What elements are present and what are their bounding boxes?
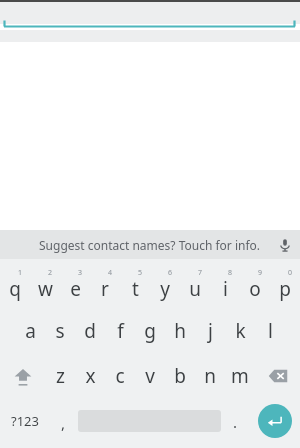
staticText: c [115,363,125,389]
staticText: j [208,318,213,344]
button[interactable]: j [195,308,225,353]
button[interactable]: 9 [240,263,270,308]
staticText: w [38,276,53,302]
button[interactable]: b [165,353,195,398]
staticText: 4 [108,268,113,278]
staticText: g [144,318,156,344]
button[interactable] [0,2,300,24]
button[interactable]: 3 [60,263,90,308]
button[interactable]: Shift [0,353,45,398]
button[interactable]: m [225,353,255,398]
staticText: y [160,276,170,302]
staticText: , [61,413,66,433]
button[interactable]: g [135,308,165,353]
staticText: d [84,318,96,344]
button[interactable]: 2 [30,263,60,308]
button[interactable]: Backspace [255,353,300,398]
button[interactable]: z [45,353,75,398]
staticText: 1 [18,268,23,278]
staticText: 7 [198,268,203,278]
staticText: a [25,318,36,344]
staticText: b [174,363,186,389]
button[interactable]: c [105,353,135,398]
staticText: l [268,318,273,344]
staticText: 8 [228,268,233,278]
button[interactable]: Enter [258,404,292,438]
button[interactable]: 5 [120,263,150,308]
staticText: 2 [48,268,53,278]
button[interactable]: v [135,353,165,398]
staticText: i [223,276,228,302]
staticText: q [9,276,21,302]
staticText: k [235,318,246,344]
staticText: v [145,363,155,389]
staticText: x [85,363,96,389]
button[interactable]: 6 [150,263,180,308]
button[interactable]: 1 [0,263,30,308]
staticText: t [132,276,139,302]
staticText: r [101,276,109,302]
button[interactable]: f [105,308,135,353]
button[interactable]: x [75,353,105,398]
button[interactable]: 8 [210,263,240,308]
button[interactable]: ?123 [0,398,49,444]
staticText: f [117,318,124,344]
button[interactable]: Suggest contact names? Touch for info. [39,230,261,259]
button[interactable]: 7 [180,263,210,308]
staticText: p [279,276,291,302]
button[interactable]: n [195,353,225,398]
button[interactable]: s [45,308,75,353]
button[interactable]: a [15,308,45,353]
button[interactable]: Voice input [270,230,300,259]
staticText: n [204,363,216,389]
staticText: h [174,318,186,344]
button[interactable]: 0 [270,263,300,308]
button[interactable]: k [225,308,255,353]
button[interactable]: Space [78,398,221,444]
staticText: 5 [138,268,143,278]
staticText: 3 [78,268,83,278]
button[interactable]: . [221,398,250,444]
staticText: 0 [288,268,293,278]
staticText: e [70,276,81,302]
staticText: m [231,363,249,389]
button[interactable]: 4 [90,263,120,308]
staticText: u [189,276,201,302]
staticText: s [55,318,65,344]
button[interactable]: h [165,308,195,353]
button[interactable]: l [255,308,285,353]
button[interactable]: , [49,398,78,444]
staticText: 9 [258,268,263,278]
staticText: . [233,412,238,432]
staticText: ?123 [11,412,39,430]
staticText: z [56,363,65,389]
staticText: Suggest contact names? Touch for info. [39,237,261,253]
staticText: 6 [168,268,173,278]
staticText: o [249,276,261,302]
button[interactable]: d [75,308,105,353]
